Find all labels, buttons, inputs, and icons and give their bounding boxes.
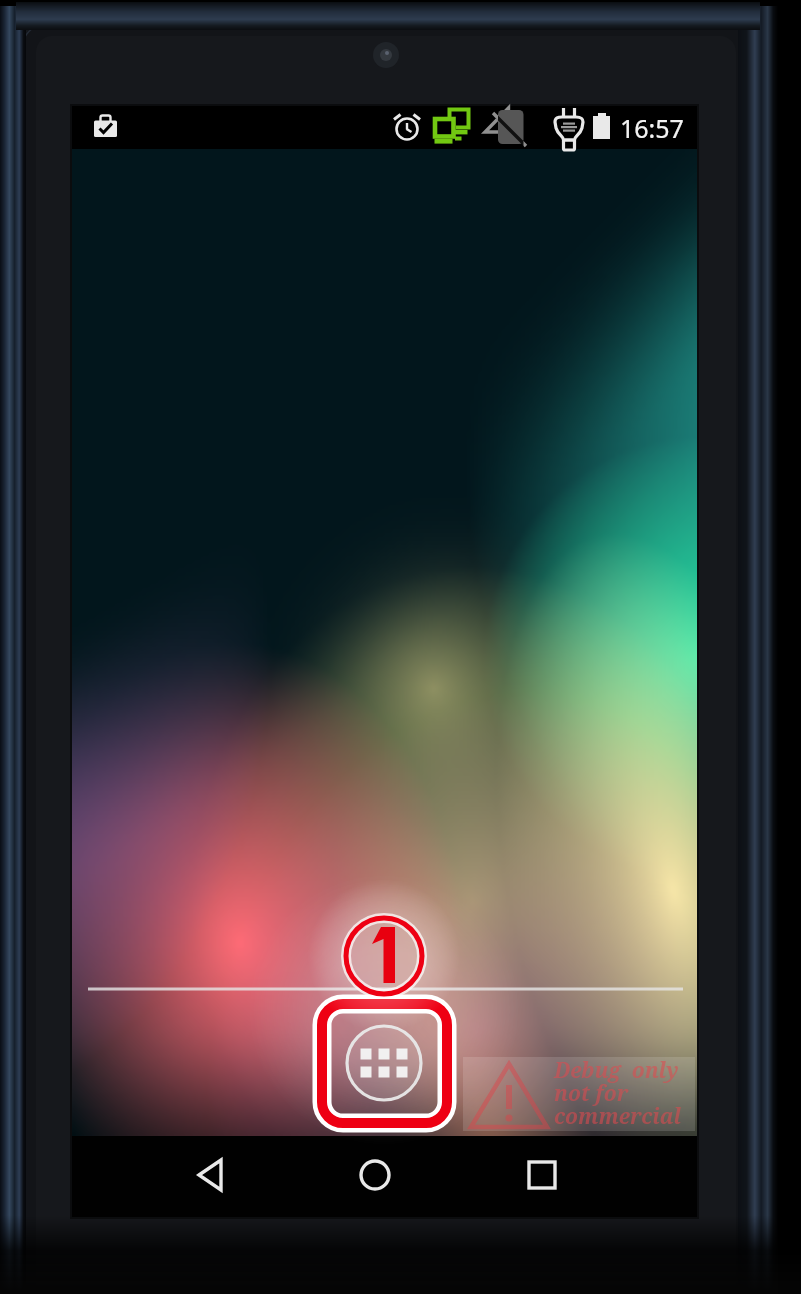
staticText: Debug only <box>554 1056 679 1085</box>
button[interactable]: Recent apps <box>502 1137 582 1215</box>
button[interactable]: Home <box>335 1137 415 1215</box>
staticText: not for <box>554 1079 629 1108</box>
button[interactable]: Apps <box>338 1017 430 1109</box>
staticText: 16:57 <box>620 111 684 145</box>
staticText: commercial <box>554 1102 682 1131</box>
button[interactable]: Back <box>173 1137 253 1215</box>
